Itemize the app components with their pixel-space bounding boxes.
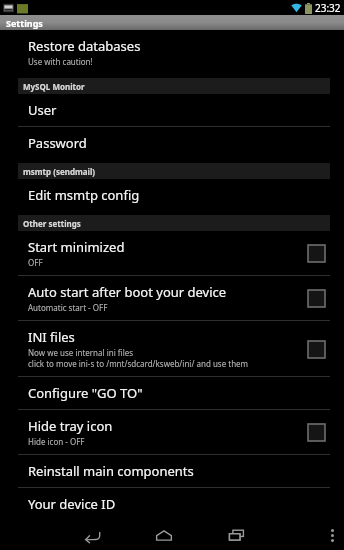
staticText: Start minimized — [28, 238, 125, 256]
staticText: OFF — [28, 257, 43, 268]
staticText: User — [28, 101, 57, 119]
button[interactable]: Your device ID — [0, 488, 344, 520]
staticText: MySQL Monitor — [23, 81, 85, 92]
button[interactable]: Toggle Auto start after boot your device — [302, 284, 330, 312]
button[interactable]: Back — [72, 520, 112, 550]
staticText: Now we use internal ini files — [28, 347, 134, 358]
button[interactable]: Toggle Start minimized — [302, 239, 330, 267]
button[interactable]: Auto start after boot your device — [0, 276, 344, 320]
staticText: Edit msmtp config — [28, 186, 140, 204]
button[interactable]: Hide tray icon — [0, 410, 344, 454]
button[interactable]: Edit msmtp config — [0, 179, 344, 211]
staticText: Your device ID — [28, 495, 116, 513]
staticText: Use with caution! — [28, 56, 93, 67]
button[interactable]: Toggle INI files — [302, 335, 330, 363]
staticText: 23:32 — [315, 1, 341, 15]
staticText: Hide tray icon — [28, 417, 113, 435]
staticText: Password — [28, 134, 87, 152]
staticText: msmtp (sendmail) — [23, 166, 96, 177]
button[interactable]: Recent apps — [216, 520, 256, 550]
button[interactable]: Configure "GO TO" — [0, 377, 344, 409]
staticText: Configure "GO TO" — [28, 384, 143, 402]
button[interactable]: Password — [0, 127, 344, 159]
button[interactable]: User — [0, 94, 344, 126]
button[interactable]: Toggle Hide tray icon — [302, 418, 330, 446]
staticText: Auto start after boot your device — [28, 283, 227, 301]
button[interactable]: Start minimized — [0, 231, 344, 275]
staticText: INI files — [28, 328, 75, 346]
button[interactable]: More options — [320, 520, 344, 550]
staticText: Hide icon - OFF — [28, 436, 85, 447]
button[interactable]: INI files — [0, 321, 344, 376]
staticText: click to move ini-s to /mnt/sdcard/ksweb… — [28, 358, 249, 369]
staticText: Automatic start - OFF — [28, 302, 108, 313]
staticText: Other settings — [23, 218, 81, 229]
staticText: Reinstall main components — [28, 462, 194, 480]
button[interactable]: Home — [144, 520, 184, 550]
staticText: Settings — [6, 17, 43, 29]
staticText: Restore databases — [28, 37, 141, 55]
button[interactable]: Reinstall main components — [0, 455, 344, 487]
button[interactable]: Restore databases — [0, 30, 344, 74]
